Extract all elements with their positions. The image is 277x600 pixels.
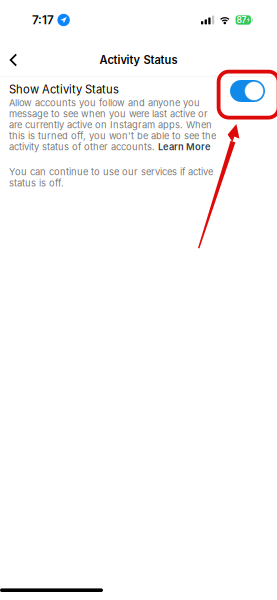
button[interactable]: Back xyxy=(0,44,31,76)
staticText: 7:17 xyxy=(32,13,54,27)
staticText: 87 xyxy=(237,15,247,25)
staticText: Allow accounts you follow and anyone you… xyxy=(9,97,216,152)
staticText: You can continue to use our services if … xyxy=(9,166,213,189)
staticText: Activity Status xyxy=(99,53,177,67)
button[interactable]: Show Activity Status xyxy=(230,80,265,102)
staticText: Show Activity Status xyxy=(9,83,119,96)
